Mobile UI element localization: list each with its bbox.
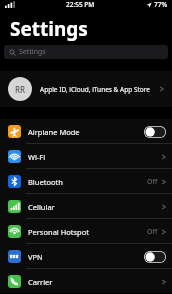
- staticText: Settings: [10, 16, 88, 42]
- staticText: Carrier: [28, 277, 53, 287]
- button[interactable]: Toggle off: [144, 251, 166, 263]
- staticText: VPN: [28, 252, 43, 262]
- staticText: 22:55 PM: [66, 0, 95, 9]
- button[interactable]: VPN: [0, 244, 172, 268]
- staticText: 77%: [154, 0, 167, 9]
- staticText: Apple ID, iCloud, iTunes & App Store: [40, 85, 150, 94]
- button[interactable]: Airplane Mode: [0, 119, 172, 143]
- button[interactable]: RR: [0, 71, 172, 107]
- staticText: RR: [15, 84, 26, 95]
- button[interactable]: Toggle off: [144, 126, 166, 138]
- button[interactable]: Personal Hotspot: [0, 219, 172, 243]
- button[interactable]: Cellular: [0, 194, 172, 218]
- staticText: Wi-Fi: [28, 152, 46, 162]
- button[interactable]: Settings: [4, 45, 168, 59]
- button[interactable]: Wi-Fi: [0, 144, 172, 168]
- staticText: Off: [147, 177, 158, 187]
- button[interactable]: Bluetooth: [0, 169, 172, 193]
- button[interactable]: Carrier: [0, 269, 172, 293]
- staticText: Settings: [19, 47, 46, 57]
- staticText: Off: [147, 227, 158, 237]
- staticText: Personal Hotspot: [28, 227, 89, 237]
- staticText: Bluetooth: [28, 177, 63, 187]
- staticText: Cellular: [28, 202, 55, 212]
- staticText: Airplane Mode: [28, 127, 80, 137]
